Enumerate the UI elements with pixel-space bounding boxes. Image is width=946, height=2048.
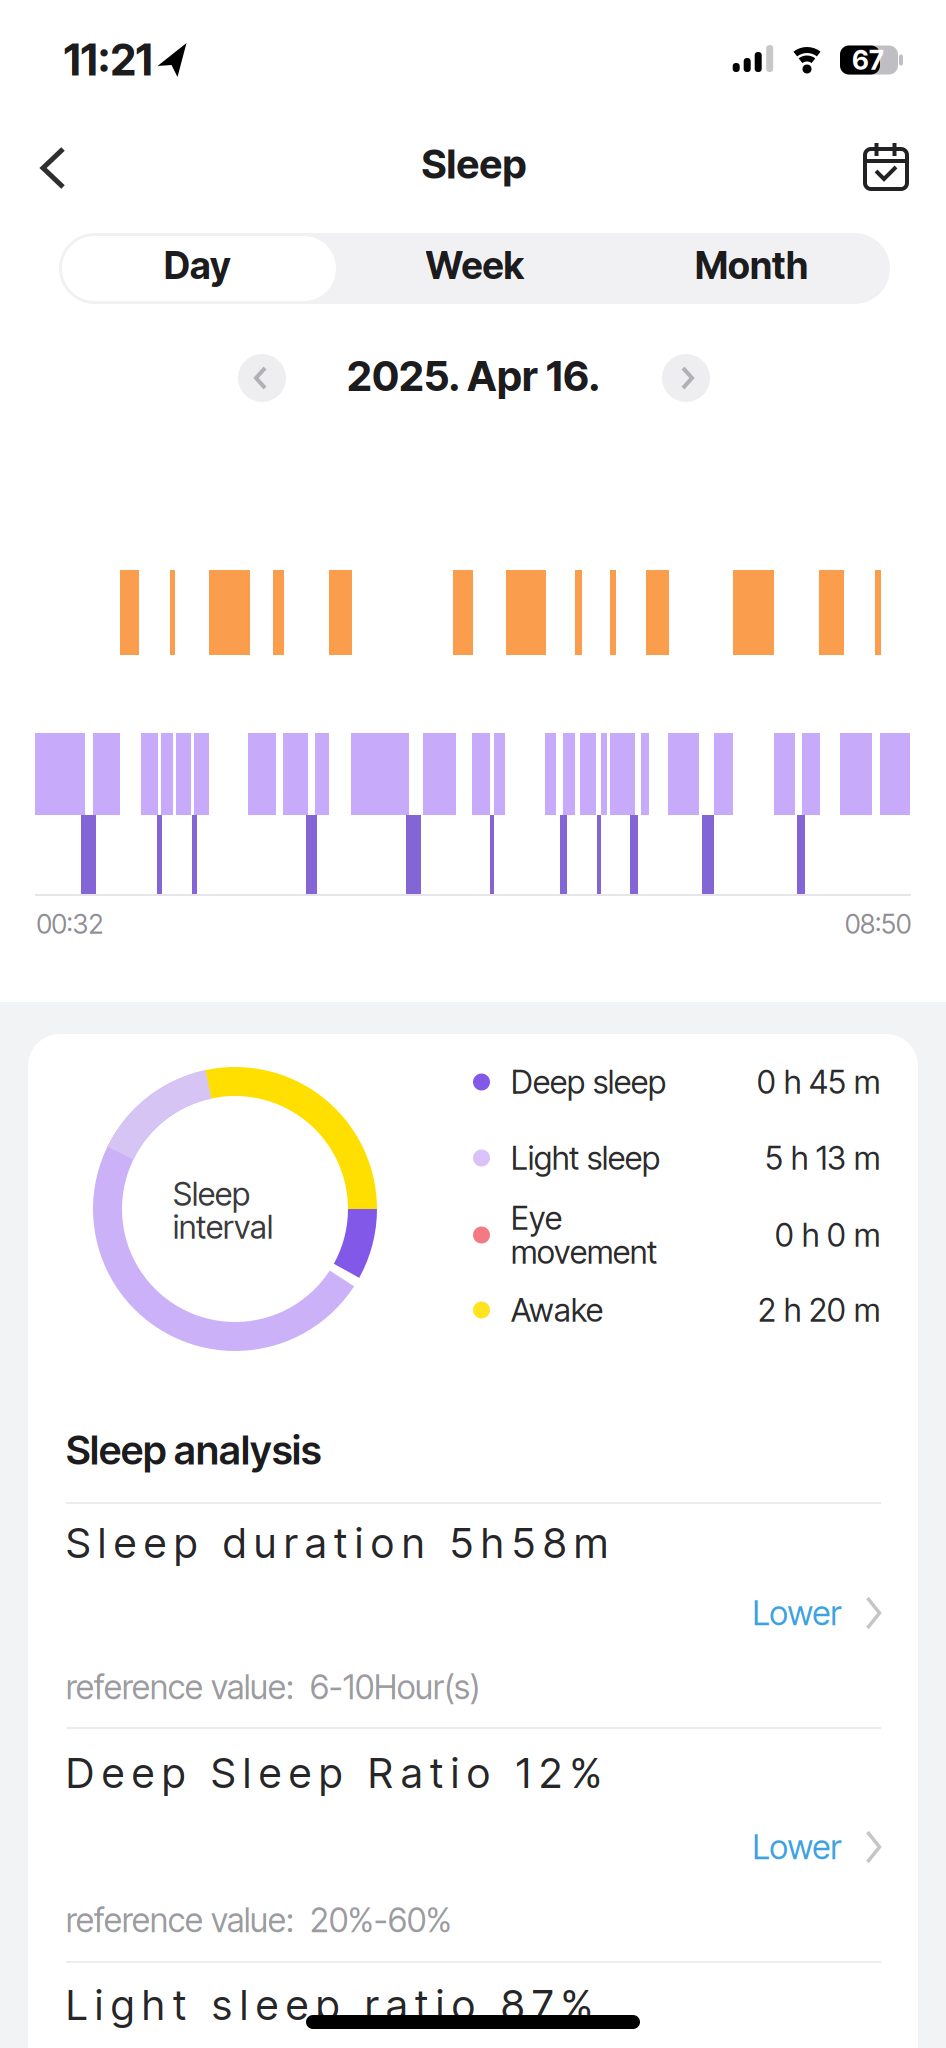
staticText: Month (695, 243, 808, 287)
staticText: Day (164, 243, 231, 287)
staticText: Sleep (173, 1175, 250, 1213)
button[interactable]: Back (40, 146, 68, 190)
button[interactable]: Calendar (863, 142, 909, 192)
button[interactable]: Week (336, 230, 613, 301)
button[interactable]: Lower (752, 1827, 881, 1867)
staticText: Light sleep (511, 1139, 660, 1177)
button[interactable]: Previous day (238, 354, 286, 402)
staticText: movement (511, 1233, 657, 1271)
staticText: reference value: 20%-60% (66, 1900, 452, 1940)
staticText: Deep sleep (511, 1063, 666, 1101)
staticText: 5 h 13 m (765, 1139, 880, 1177)
staticText: Lower (752, 1827, 841, 1867)
staticText: 0 h 0 m (775, 1216, 880, 1254)
staticText: 11:21 (63, 35, 152, 85)
staticText: Sleep analysis (66, 1426, 321, 1474)
staticText: D e e p S l e e p R a t i o 1 2 % (66, 1749, 602, 1797)
button[interactable]: Month (613, 230, 890, 301)
staticText: Awake (511, 1291, 603, 1329)
staticText: 00:32 (36, 908, 103, 940)
staticText: interval (173, 1208, 273, 1246)
staticText: 08:50 (845, 908, 911, 940)
staticText: Eye (511, 1199, 562, 1237)
staticText: 2 h 20 m (758, 1291, 880, 1329)
staticText: 2025. Apr 16. (347, 352, 601, 400)
staticText: 0 h 45 m (757, 1063, 880, 1101)
staticText: Week (425, 243, 523, 287)
staticText: S l e e p d u r a t i o n 5 h 5 8 m (66, 1519, 608, 1567)
staticText: L i g h t s l e e p r a t i o 8 7 % (66, 1981, 593, 2029)
staticText: 67 (852, 44, 884, 76)
staticText: reference value: 6-10Hour(s) (66, 1667, 480, 1707)
staticText: Sleep (421, 140, 526, 188)
staticText: Lower (752, 1593, 841, 1633)
button[interactable]: Lower (752, 1593, 881, 1633)
button[interactable]: Day (59, 230, 336, 301)
button[interactable]: Next day (662, 354, 710, 402)
